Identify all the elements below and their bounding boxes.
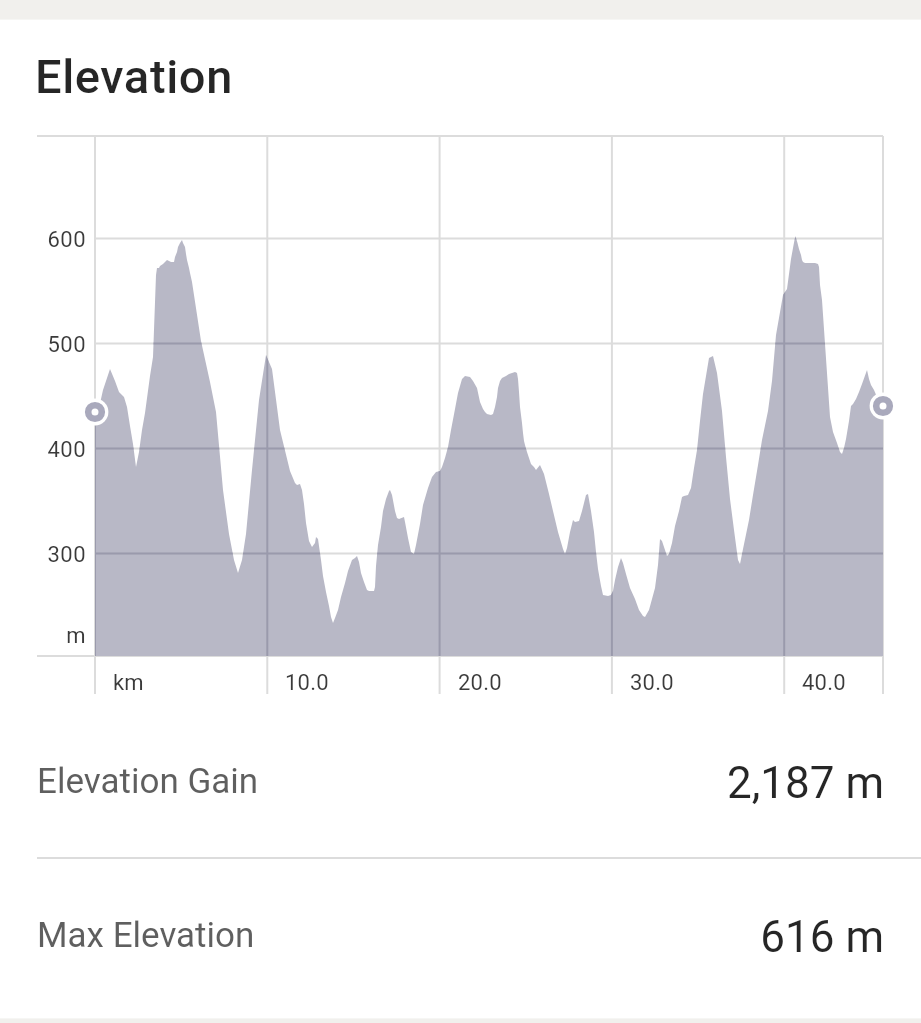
staticText: 10.0 [285,670,329,696]
staticText: 500 [0,332,86,358]
button[interactable]: Elevation Gain [0,706,921,858]
staticText: 2,187 m [0,757,884,809]
staticText: Elevation Gain [37,761,259,802]
staticText: 600 [0,227,86,253]
staticText: Elevation [35,49,233,104]
staticText: 30.0 [630,670,674,696]
staticText: 400 [0,437,86,463]
staticText: 40.0 [802,670,846,696]
staticText: m [0,623,86,649]
button[interactable]: Max Elevation [0,860,921,1012]
staticText: 616 m [0,911,884,963]
staticText: 300 [0,542,86,568]
staticText: 20.0 [458,670,502,696]
staticText: km [113,670,144,696]
staticText: Max Elevation [37,915,255,956]
